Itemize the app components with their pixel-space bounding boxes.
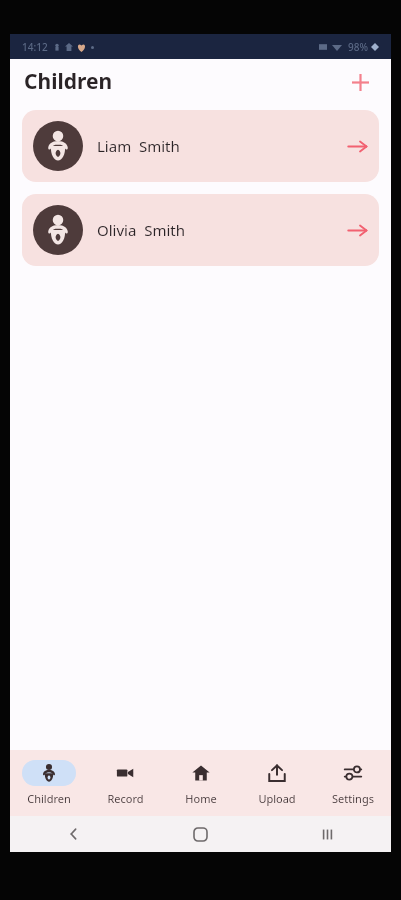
staticText: Upload: [258, 791, 296, 806]
button[interactable]: Settings: [315, 750, 391, 816]
button[interactable]: Upload: [239, 750, 315, 816]
staticText: Record: [107, 791, 144, 806]
staticText: 98%: [348, 40, 368, 54]
button[interactable]: Home: [137, 816, 264, 852]
staticText: Home: [185, 791, 217, 806]
button[interactable]: Add child: [345, 67, 375, 97]
staticText: Olivia Smith: [97, 220, 185, 240]
button[interactable]: Children: [10, 750, 87, 816]
button[interactable]: Liam Smith: [22, 110, 379, 182]
staticText: Settings: [332, 791, 374, 806]
staticText: Children: [24, 67, 113, 96]
button[interactable]: Home: [163, 750, 239, 816]
button[interactable]: Back: [10, 816, 137, 852]
staticText: 14:12: [22, 40, 48, 54]
button[interactable]: Olivia Smith: [22, 194, 379, 266]
staticText: Liam Smith: [97, 136, 180, 156]
button[interactable]: Record: [87, 750, 163, 816]
button[interactable]: Recent apps: [264, 816, 391, 852]
staticText: Children: [27, 791, 71, 806]
